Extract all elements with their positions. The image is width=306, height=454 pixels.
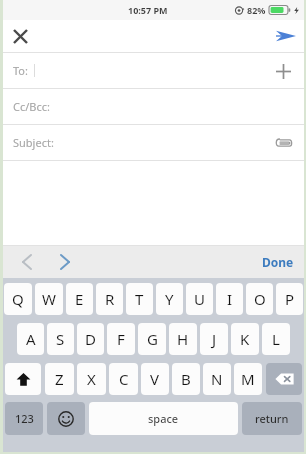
staticText: To: <box>13 63 28 78</box>
button[interactable]: M <box>234 363 262 395</box>
staticText: 82% <box>247 4 266 16</box>
button[interactable]: T <box>126 283 153 315</box>
staticText: return <box>255 411 289 426</box>
staticText: Y <box>165 289 174 309</box>
button[interactable]: U <box>186 283 213 315</box>
staticText: S <box>56 329 65 349</box>
button[interactable]: W <box>35 283 63 315</box>
button[interactable]: space <box>89 402 238 435</box>
staticText: 123 <box>15 411 34 426</box>
button[interactable]: Add contact <box>270 58 296 84</box>
button[interactable]: Cc/Bcc: <box>3 89 304 124</box>
staticText: B <box>181 369 191 389</box>
button[interactable]: To: <box>3 53 304 88</box>
staticText: I <box>227 289 233 309</box>
button[interactable]: P <box>276 283 303 315</box>
staticText: N <box>211 369 223 389</box>
button[interactable]: A <box>17 323 44 355</box>
button[interactable]: Close <box>3 20 37 52</box>
button[interactable]: Done <box>252 250 304 274</box>
button[interactable]: Previous field <box>11 246 43 278</box>
button[interactable]: Next field <box>49 246 81 278</box>
staticText: T <box>135 289 144 309</box>
button[interactable]: F <box>107 323 135 355</box>
button[interactable]: K <box>231 323 259 355</box>
button[interactable]: O <box>246 283 273 315</box>
button[interactable]: G <box>138 323 166 355</box>
staticText: U <box>194 289 205 309</box>
staticText: E <box>75 289 84 309</box>
staticText: V <box>150 369 160 389</box>
staticText: M <box>241 369 255 389</box>
staticText: Z <box>55 369 64 389</box>
button[interactable]: E <box>66 283 93 315</box>
staticText: A <box>26 329 36 349</box>
button[interactable]: R <box>96 283 123 315</box>
button[interactable]: C <box>109 363 138 395</box>
button[interactable]: return <box>242 402 302 435</box>
button[interactable]: Z <box>45 363 74 395</box>
button[interactable]: L <box>262 323 290 355</box>
button[interactable]: I <box>216 283 243 315</box>
staticText: space <box>148 411 179 426</box>
button[interactable]: Q <box>4 283 32 315</box>
staticText: F <box>117 329 125 349</box>
button[interactable]: Subject: <box>3 125 304 160</box>
staticText: C <box>119 369 129 389</box>
button[interactable]: D <box>77 323 104 355</box>
staticText: X <box>87 369 96 389</box>
staticText: D <box>85 329 96 349</box>
button[interactable]: Send <box>268 20 304 52</box>
button[interactable]: J <box>200 323 228 355</box>
button[interactable]: Numbers <box>5 402 43 435</box>
staticText: Subject: <box>13 135 54 150</box>
staticText: 10:57 PM <box>128 4 168 16</box>
button[interactable]: Attach file <box>270 130 296 156</box>
button[interactable]: N <box>203 363 231 395</box>
button[interactable]: X <box>77 363 106 395</box>
staticText: Cc/Bcc: <box>13 99 50 114</box>
staticText: W <box>42 289 56 309</box>
button[interactable]: B <box>172 363 200 395</box>
button[interactable]: H <box>169 323 197 355</box>
staticText: G <box>147 329 158 349</box>
staticText: P <box>285 289 295 309</box>
button[interactable]: Backspace <box>266 363 302 395</box>
button[interactable]: Y <box>156 283 183 315</box>
button[interactable]: V <box>141 363 169 395</box>
button[interactable]: Emoji <box>47 402 85 435</box>
staticText: J <box>212 329 217 349</box>
button[interactable]: S <box>47 323 74 355</box>
staticText: Done <box>262 254 294 270</box>
staticText: Q <box>12 289 24 309</box>
staticText: K <box>240 329 250 349</box>
button[interactable]: Shift <box>5 363 41 395</box>
staticText: H <box>177 329 189 349</box>
staticText: R <box>105 289 115 309</box>
staticText: L <box>272 329 280 349</box>
staticText: O <box>254 289 266 309</box>
